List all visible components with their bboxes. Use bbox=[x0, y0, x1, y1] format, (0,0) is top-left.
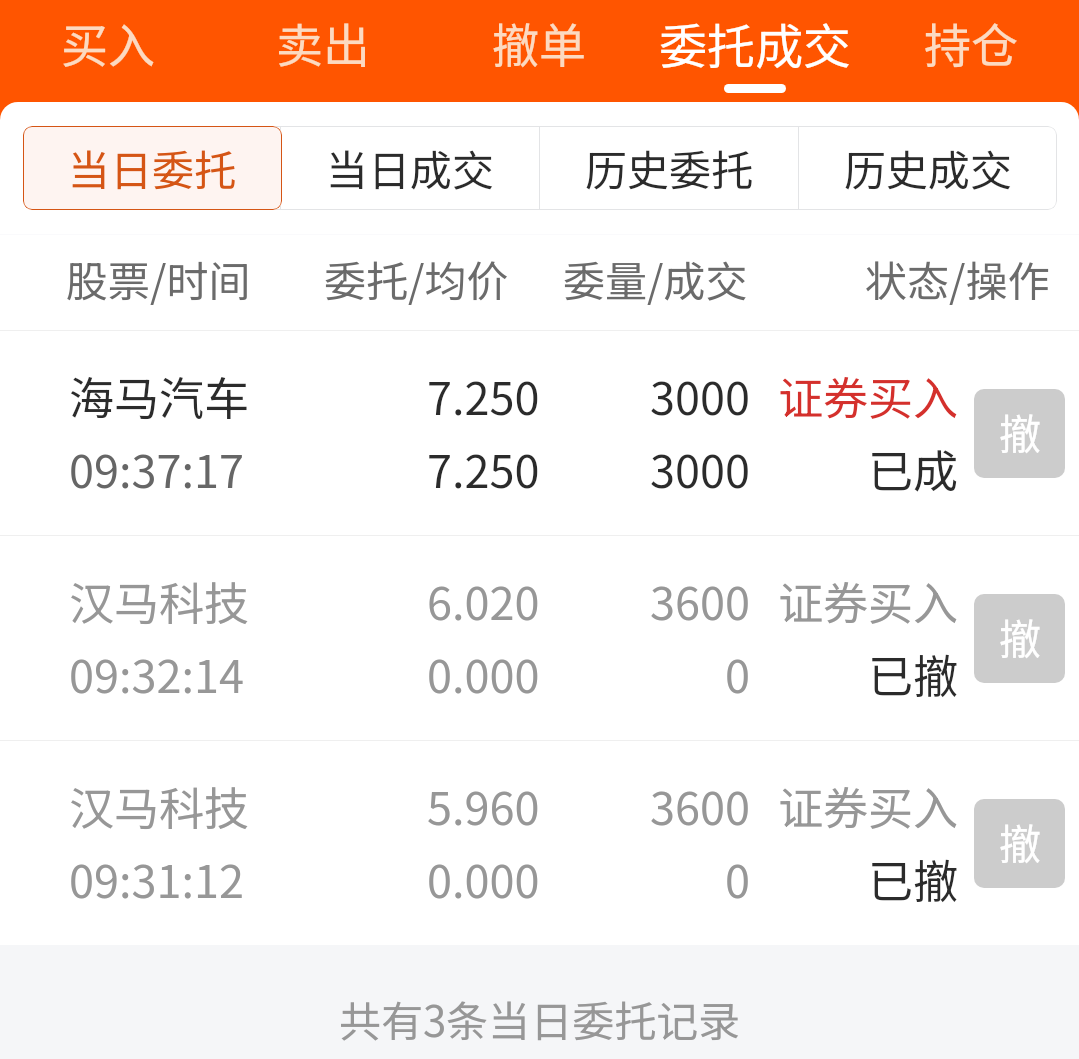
staticText: 已撤 bbox=[868, 846, 959, 911]
staticText: 汉马科技 bbox=[69, 773, 250, 838]
staticText: 0.000 bbox=[427, 846, 540, 911]
staticText: 撤单 bbox=[492, 8, 586, 76]
button[interactable]: 撤 bbox=[974, 389, 1065, 478]
button[interactable]: 海马汽车 bbox=[0, 331, 1079, 535]
staticText: 证券买入 bbox=[778, 773, 959, 838]
button[interactable]: 汉马科技 bbox=[0, 536, 1079, 740]
staticText: 证券买入 bbox=[778, 363, 959, 428]
staticText: 7.250 bbox=[427, 363, 540, 428]
button[interactable]: 卖出 bbox=[215, 0, 431, 102]
staticText: 09:37:17 bbox=[69, 436, 244, 501]
staticText: 撤 bbox=[999, 606, 1042, 667]
staticText: 撤 bbox=[999, 401, 1042, 462]
staticText: 证券买入 bbox=[778, 568, 959, 633]
staticText: 3000 bbox=[650, 436, 750, 501]
staticText: 已成 bbox=[868, 436, 959, 501]
button[interactable]: 买入 bbox=[0, 0, 215, 102]
staticText: 0 bbox=[725, 641, 750, 706]
button[interactable]: 委托成交 bbox=[647, 0, 863, 102]
staticText: 已撤 bbox=[868, 641, 959, 706]
staticText: 0.000 bbox=[427, 641, 540, 706]
staticText: 委托成交 bbox=[659, 8, 852, 78]
staticText: 3600 bbox=[650, 568, 750, 633]
staticText: 卖出 bbox=[276, 8, 370, 76]
button[interactable]: 撤 bbox=[974, 594, 1065, 683]
button[interactable]: 历史委托 bbox=[540, 126, 798, 210]
staticText: 海马汽车 bbox=[69, 363, 250, 428]
staticText: 09:31:12 bbox=[69, 846, 244, 911]
staticText: 汉马科技 bbox=[69, 568, 250, 633]
staticText: 共有3条当日委托记录 bbox=[339, 988, 741, 1049]
button[interactable]: 撤单 bbox=[431, 0, 647, 102]
button[interactable]: 当日委托 bbox=[23, 126, 280, 210]
staticText: 3600 bbox=[650, 773, 750, 838]
staticText: 撤 bbox=[999, 811, 1042, 872]
staticText: 当日成交 bbox=[326, 137, 495, 198]
staticText: 历史委托 bbox=[585, 137, 754, 198]
staticText: 状态/操作 bbox=[865, 248, 1050, 309]
staticText: 委托/均价 bbox=[324, 248, 509, 309]
staticText: 7.250 bbox=[427, 436, 540, 501]
staticText: 股票/时间 bbox=[66, 248, 251, 309]
staticText: 持仓 bbox=[924, 8, 1018, 76]
staticText: 买入 bbox=[61, 8, 155, 76]
button[interactable]: 历史成交 bbox=[799, 126, 1057, 210]
button[interactable]: 汉马科技 bbox=[0, 741, 1079, 945]
staticText: 3000 bbox=[650, 363, 750, 428]
staticText: 当日委托 bbox=[67, 137, 236, 198]
staticText: 6.020 bbox=[427, 568, 540, 633]
staticText: 当日委托 bbox=[68, 137, 237, 198]
staticText: 09:32:14 bbox=[69, 641, 244, 706]
button[interactable]: 当日委托 bbox=[23, 126, 282, 210]
button[interactable]: 撤 bbox=[974, 799, 1065, 888]
staticText: 5.960 bbox=[427, 773, 540, 838]
staticText: 0 bbox=[725, 846, 750, 911]
button[interactable]: 当日成交 bbox=[281, 126, 539, 210]
staticText: 委量/成交 bbox=[563, 248, 748, 309]
staticText: 历史成交 bbox=[844, 137, 1013, 198]
button[interactable]: 持仓 bbox=[863, 0, 1079, 102]
